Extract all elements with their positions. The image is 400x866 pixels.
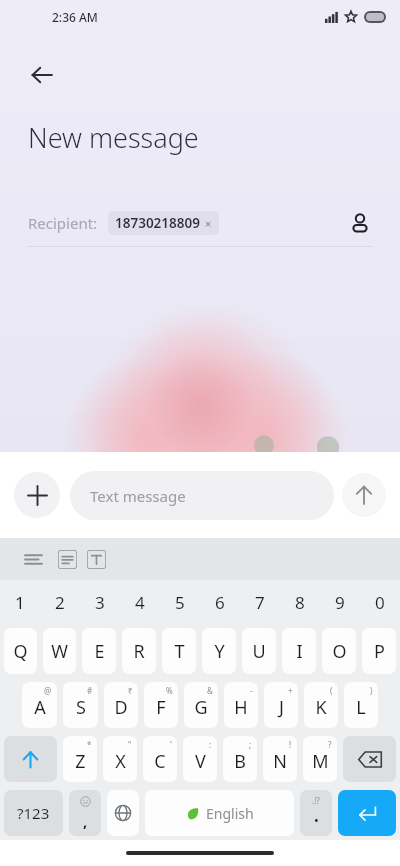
button[interactable]: R bbox=[122, 628, 156, 674]
staticText: 8 bbox=[295, 591, 305, 614]
staticText: O bbox=[332, 639, 347, 664]
staticText: 0 bbox=[375, 591, 385, 614]
staticText: - bbox=[250, 685, 253, 696]
staticText: T bbox=[174, 639, 185, 664]
staticText: " bbox=[128, 739, 132, 750]
staticText: 9 bbox=[335, 591, 345, 614]
staticText: I bbox=[296, 639, 303, 664]
button[interactable]: ?123 bbox=[4, 790, 63, 836]
button[interactable]: " bbox=[103, 736, 137, 782]
staticText: A bbox=[34, 695, 46, 720]
button[interactable]: Backspace bbox=[343, 736, 396, 782]
button[interactable]: Change keyboard language bbox=[107, 790, 139, 836]
staticText: + bbox=[288, 685, 293, 696]
button[interactable]: 9 bbox=[320, 580, 360, 624]
button[interactable]: 7 bbox=[240, 580, 280, 624]
button[interactable]: Add attachment bbox=[14, 472, 60, 518]
button[interactable]: Add contact bbox=[338, 201, 382, 245]
button[interactable]: 0 bbox=[360, 580, 400, 624]
button[interactable]: P bbox=[362, 628, 396, 674]
staticText: 5 bbox=[175, 591, 185, 614]
button[interactable]: Text message bbox=[70, 471, 334, 520]
button[interactable]: Enter bbox=[338, 790, 396, 836]
staticText: % bbox=[166, 685, 173, 696]
button[interactable]: 8 bbox=[280, 580, 320, 624]
button[interactable]: Back bbox=[18, 51, 66, 99]
staticText: W bbox=[51, 639, 68, 664]
button[interactable]: 5 bbox=[160, 580, 200, 624]
staticText: X bbox=[115, 749, 126, 774]
button[interactable]: * bbox=[63, 736, 97, 782]
button[interactable]: E bbox=[82, 628, 116, 674]
staticText: Q bbox=[13, 639, 28, 664]
button[interactable]: : bbox=[183, 736, 217, 782]
button[interactable]: Q bbox=[4, 628, 37, 674]
staticText: K bbox=[315, 695, 327, 720]
staticText: English bbox=[206, 804, 254, 823]
button[interactable]: clipboard bbox=[58, 550, 77, 569]
staticText: M bbox=[312, 749, 329, 774]
button[interactable]: + bbox=[264, 682, 298, 728]
staticText: D bbox=[114, 695, 128, 720]
button[interactable]: ' bbox=[143, 736, 177, 782]
button[interactable]: English bbox=[145, 790, 294, 836]
staticText: ₹ bbox=[128, 685, 133, 696]
staticText: ; bbox=[249, 739, 252, 750]
button[interactable]: Y bbox=[202, 628, 236, 674]
button[interactable]: & bbox=[184, 682, 218, 728]
staticText: L bbox=[356, 695, 366, 720]
staticText: N bbox=[273, 749, 287, 774]
staticText: 3 bbox=[95, 591, 105, 614]
button[interactable]: ! bbox=[263, 736, 297, 782]
button[interactable]: 6 bbox=[200, 580, 240, 624]
staticText: B bbox=[234, 749, 246, 774]
button[interactable]: 2 bbox=[40, 580, 80, 624]
staticText: Y bbox=[214, 639, 225, 664]
button[interactable]: ; bbox=[223, 736, 257, 782]
button[interactable]: Menu bbox=[18, 544, 48, 574]
button[interactable]: Send bbox=[342, 473, 386, 517]
button[interactable]: 4 bbox=[120, 580, 160, 624]
staticText: . bbox=[314, 804, 319, 827]
staticText: ?123 bbox=[17, 803, 50, 823]
staticText: ! bbox=[289, 739, 292, 750]
staticText: C bbox=[154, 749, 166, 774]
staticText: P bbox=[374, 639, 385, 664]
button[interactable]: Emoji and comma bbox=[69, 790, 101, 836]
staticText: E bbox=[94, 639, 105, 664]
button[interactable]: I bbox=[282, 628, 316, 674]
button[interactable]: % bbox=[144, 682, 178, 728]
button[interactable]: 1 bbox=[0, 580, 40, 624]
staticText: V bbox=[195, 749, 206, 774]
button[interactable]: O bbox=[322, 628, 356, 674]
staticText: 2:36 AM bbox=[52, 9, 98, 25]
button[interactable]: @ bbox=[22, 682, 57, 728]
staticText: J bbox=[279, 695, 284, 720]
staticText: R bbox=[133, 639, 145, 664]
button[interactable]: ) bbox=[344, 682, 378, 728]
button[interactable]: - bbox=[224, 682, 258, 728]
staticText: 6 bbox=[215, 591, 225, 614]
staticText: & bbox=[207, 685, 213, 696]
staticText: @ bbox=[44, 685, 52, 696]
button[interactable]: Shift bbox=[4, 736, 57, 782]
button[interactable]: W bbox=[43, 628, 76, 674]
button[interactable]: 18730218809 bbox=[108, 211, 219, 235]
staticText: # bbox=[87, 685, 93, 696]
button[interactable]: # bbox=[63, 682, 98, 728]
button[interactable]: ₹ bbox=[104, 682, 138, 728]
staticText: 18730218809 bbox=[115, 214, 200, 232]
button[interactable]: 3 bbox=[80, 580, 120, 624]
staticText: * bbox=[87, 739, 92, 750]
button[interactable]: .!? bbox=[300, 790, 332, 836]
staticText: 4 bbox=[135, 591, 145, 614]
staticText: : bbox=[209, 739, 212, 750]
button[interactable]: T bbox=[162, 628, 196, 674]
button[interactable]: ? bbox=[303, 736, 337, 782]
button[interactable]: Text style bbox=[87, 550, 106, 569]
button[interactable]: U bbox=[242, 628, 276, 674]
staticText: F bbox=[156, 695, 166, 720]
staticText: 7 bbox=[255, 591, 265, 614]
button[interactable]: ( bbox=[304, 682, 338, 728]
staticText: H bbox=[234, 695, 248, 720]
